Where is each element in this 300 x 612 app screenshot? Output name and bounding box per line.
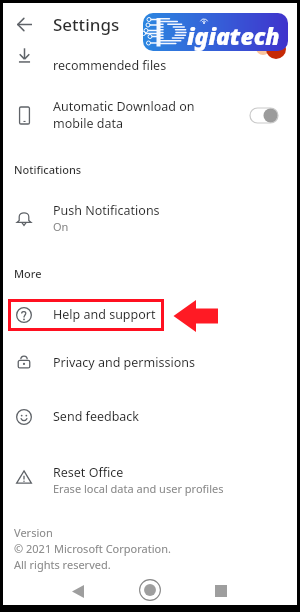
button[interactable] (3, 195, 297, 241)
staticText: Notifications (14, 162, 82, 177)
button[interactable] (3, 455, 297, 503)
button[interactable] (3, 91, 297, 137)
staticText: Reset Office (53, 464, 124, 481)
staticText: All rights reserved. (14, 557, 111, 572)
button[interactable] (3, 341, 297, 383)
staticText: Help and support (53, 306, 156, 323)
staticText: Send feedback (53, 408, 140, 425)
staticText: recommended files (53, 57, 167, 74)
staticText: © 2021 Microsoft Corporation. (14, 541, 171, 556)
button[interactable] (3, 396, 297, 438)
button[interactable]: Back (64, 577, 92, 605)
staticText: Automatic Download on mobile data (53, 98, 195, 132)
staticText: Push Notifications (53, 202, 160, 219)
button[interactable]: Recent apps (207, 577, 235, 605)
button[interactable]: Automatic download toggle (250, 108, 278, 123)
staticText: Privacy and permissions (53, 354, 195, 371)
button[interactable]: Home (135, 575, 165, 605)
staticText: igiatech (187, 20, 280, 51)
staticText: On (53, 219, 69, 234)
staticText: Version (14, 525, 53, 540)
button[interactable] (3, 296, 297, 336)
staticText: More (14, 266, 42, 281)
button[interactable]: Back (11, 11, 37, 37)
staticText: Erase local data and user profiles (53, 481, 224, 496)
staticText: Settings (53, 13, 120, 36)
